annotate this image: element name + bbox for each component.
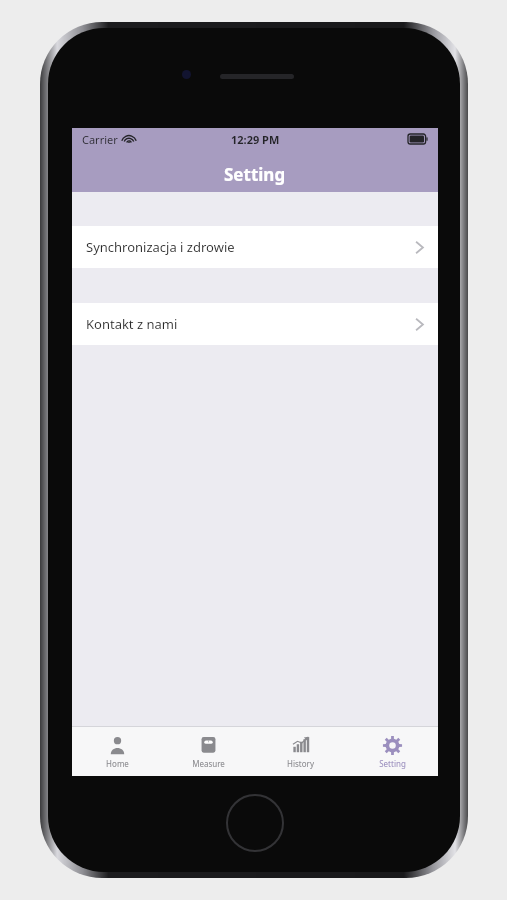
button[interactable]: Home: [72, 727, 163, 776]
button[interactable]: Measure: [163, 727, 254, 776]
staticText: 12:29 PM: [231, 132, 280, 147]
staticText: Setting: [224, 163, 286, 186]
staticText: History: [287, 758, 314, 769]
staticText: Measure: [192, 758, 225, 769]
staticText: Kontakt z nami: [86, 315, 415, 333]
staticText: Setting: [379, 758, 406, 769]
staticText: Carrier: [82, 132, 118, 147]
button[interactable]: Kontakt z nami: [72, 303, 438, 345]
button[interactable]: History: [254, 727, 346, 776]
button[interactable]: Setting: [346, 727, 438, 776]
staticText: Home: [106, 758, 129, 769]
staticText: Synchronizacja i zdrowie: [86, 238, 415, 256]
button[interactable]: Synchronizacja i zdrowie: [72, 226, 438, 268]
